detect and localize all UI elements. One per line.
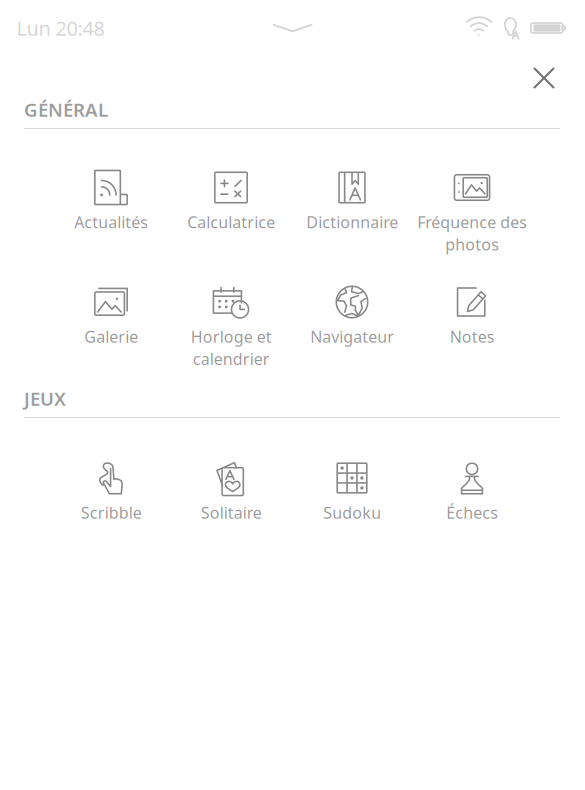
staticText: Actualités [74, 211, 148, 233]
button[interactable]: Fréquence des photos [413, 164, 531, 264]
button[interactable]: Navigateur [293, 279, 411, 379]
staticText: Dictionnaire [306, 211, 398, 233]
staticText: Horloge et calendrier [190, 326, 271, 369]
button[interactable]: Calculatrice [172, 164, 290, 264]
staticText: Sudoku [323, 502, 381, 523]
staticText: Navigateur [310, 326, 394, 347]
button[interactable]: Close [516, 52, 572, 104]
button[interactable]: Sudoku [293, 455, 411, 555]
button[interactable]: Horloge et calendrier [172, 279, 290, 379]
staticText: Échecs [446, 502, 498, 523]
staticText: Galerie [84, 326, 138, 347]
staticText: JEUX [24, 386, 66, 411]
staticText: Lun 20:48 [16, 15, 104, 41]
button[interactable]: Scribble [52, 455, 170, 555]
staticText: Solitaire [200, 502, 261, 523]
staticText: GÉNÉRAL [24, 97, 108, 122]
button[interactable]: Notes [413, 279, 531, 379]
button[interactable]: Actualités [52, 164, 170, 264]
button[interactable]: Dictionnaire [293, 164, 411, 264]
button[interactable]: Échecs [413, 455, 531, 555]
button[interactable]: Galerie [52, 279, 170, 379]
staticText: Scribble [80, 502, 141, 523]
button[interactable]: Solitaire [172, 455, 290, 555]
staticText: Notes [449, 326, 494, 347]
staticText: Calculatrice [187, 211, 275, 233]
staticText: Fréquence des photos [417, 211, 527, 255]
